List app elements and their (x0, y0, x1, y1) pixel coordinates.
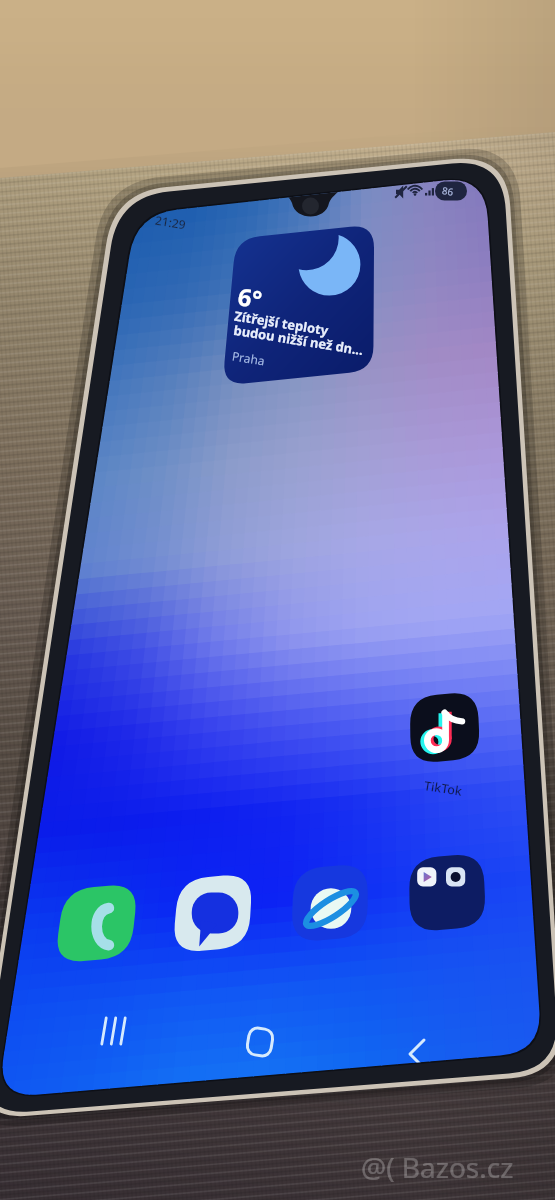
staticText: Zítřejší teploty (233, 307, 330, 339)
staticText: Praha (231, 347, 266, 368)
staticText: 21:29 (154, 212, 187, 232)
button[interactable]: Apps folder (409, 853, 486, 939)
staticText: @( Bazos.cz (361, 1148, 514, 1186)
button[interactable]: Messages (172, 873, 253, 959)
button[interactable]: Phone (53, 883, 138, 969)
button[interactable]: Back (388, 1026, 444, 1082)
button[interactable]: Home (232, 1014, 288, 1070)
button[interactable]: Internet (291, 863, 368, 949)
staticText: 6° (236, 279, 264, 316)
button[interactable]: Weather widget, 6 degrees, Praha (222, 224, 374, 386)
staticText: budou nižší než dn... (232, 321, 365, 359)
staticText: TikTok (423, 777, 464, 800)
staticText: 86 (441, 183, 455, 199)
button[interactable]: Recent apps (85, 1003, 141, 1059)
button[interactable]: TikTok (410, 691, 481, 776)
